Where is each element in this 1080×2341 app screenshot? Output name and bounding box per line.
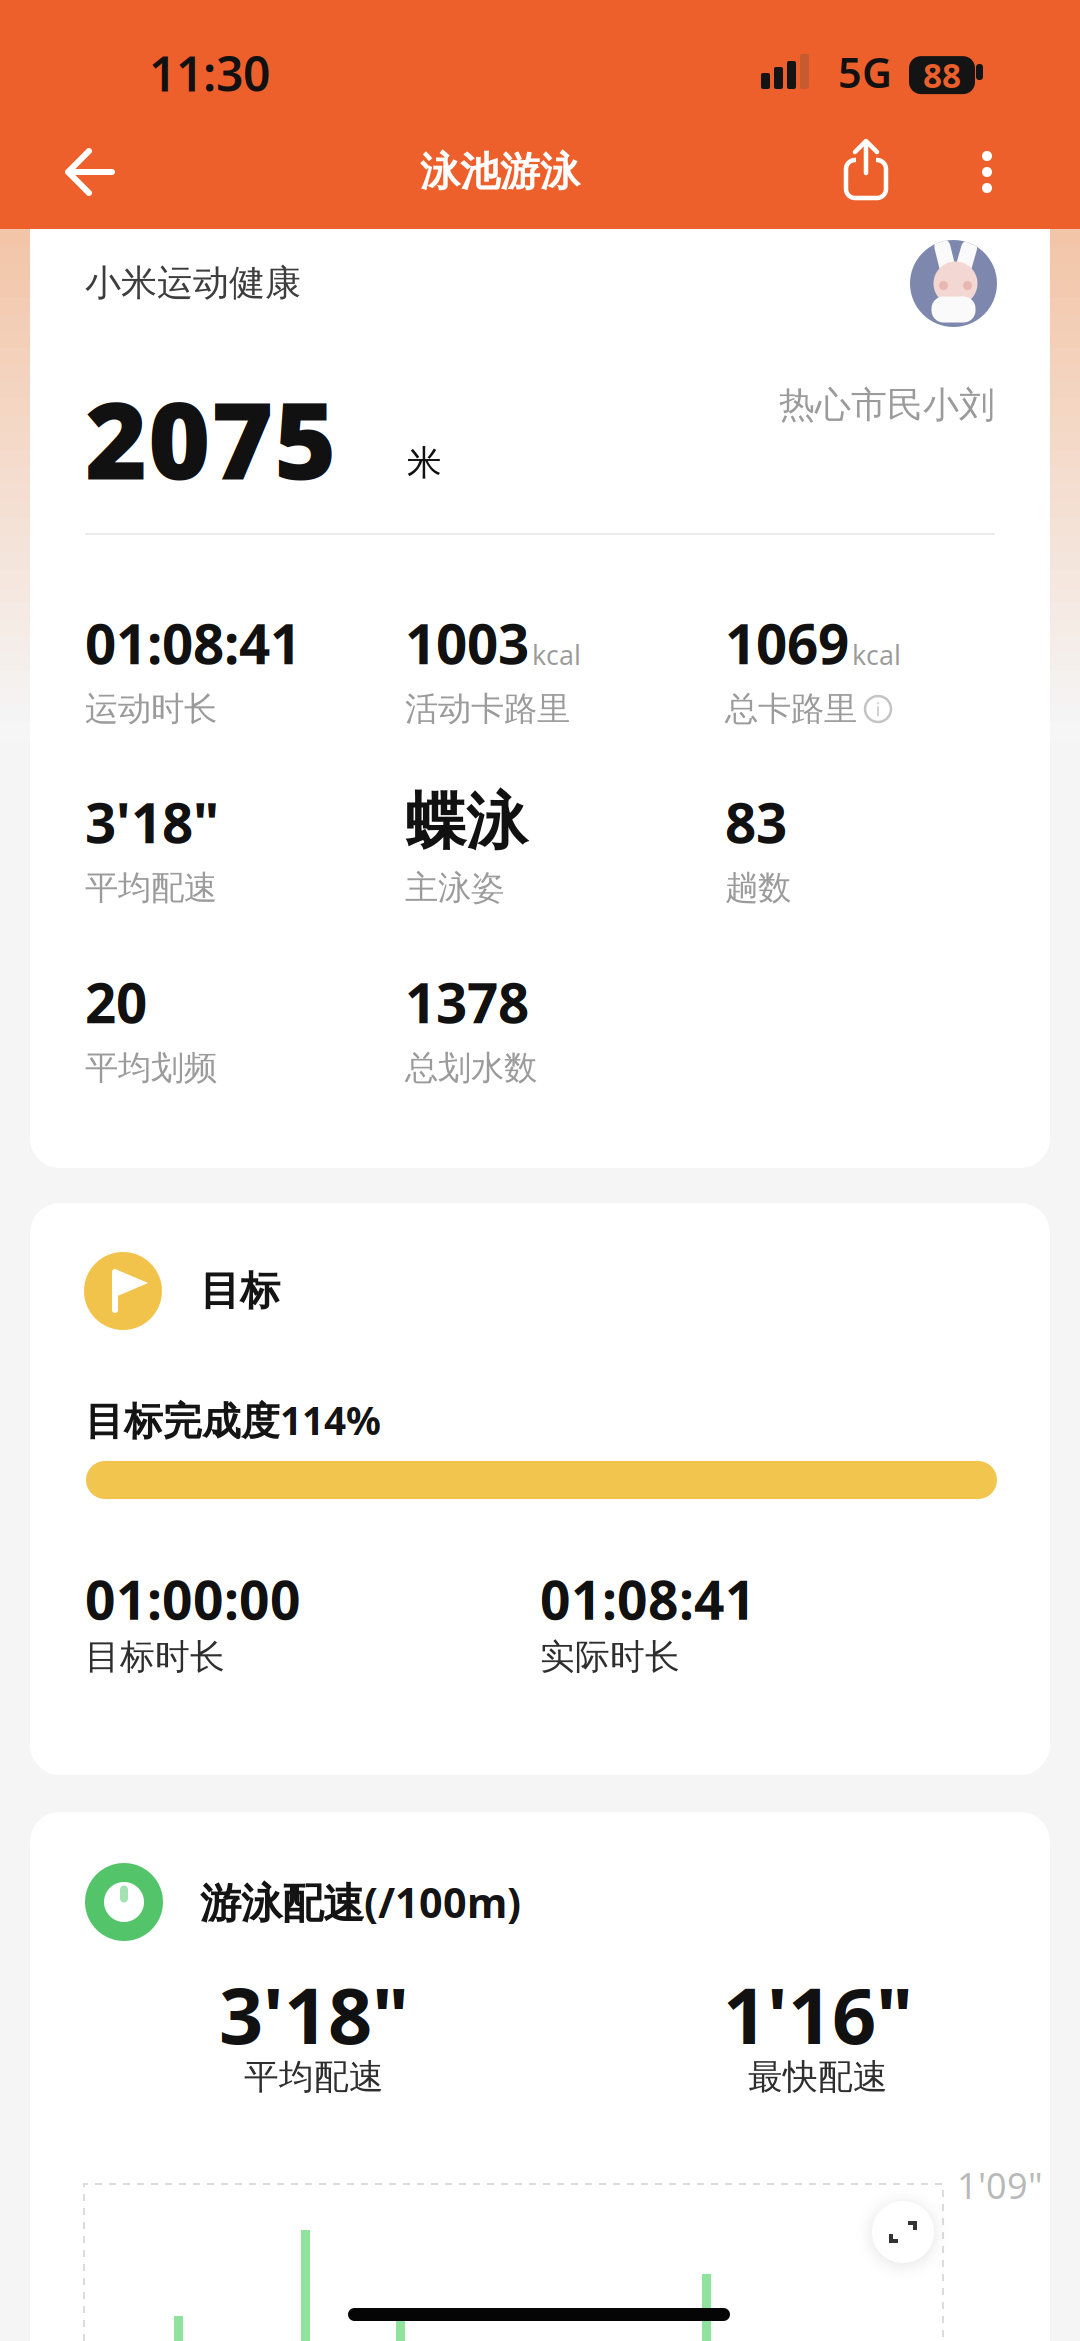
staticText: 蝶泳 bbox=[405, 784, 527, 860]
staticText: 最快配速 bbox=[748, 2056, 888, 2098]
staticText: 5G bbox=[838, 45, 892, 99]
staticText: 1378 bbox=[405, 966, 529, 1038]
button[interactable]: About total calories bbox=[865, 696, 891, 722]
staticText: 活动卡路里 bbox=[405, 688, 570, 729]
staticText: 总卡路里 bbox=[725, 688, 857, 729]
staticText: 米 bbox=[407, 442, 442, 484]
staticText: 运动时长 bbox=[85, 688, 217, 729]
staticText: 01:00:00 bbox=[85, 1564, 301, 1634]
staticText: 20 bbox=[85, 966, 147, 1038]
staticText: 主泳姿 bbox=[405, 867, 504, 908]
staticText: 83 bbox=[725, 786, 787, 858]
staticText: kcal bbox=[532, 637, 581, 672]
staticText: 小米运动健康 bbox=[85, 261, 301, 305]
staticText: 3'18" bbox=[219, 1963, 409, 2065]
staticText: 游泳配速(/100m) bbox=[200, 1875, 521, 1929]
staticText: 01:08:41 bbox=[85, 607, 301, 679]
button[interactable]: Back bbox=[44, 127, 134, 217]
staticText: 01:08:41 bbox=[540, 1564, 756, 1634]
staticText: 1003 bbox=[405, 607, 529, 679]
staticText: 88 bbox=[923, 53, 961, 97]
staticText: 1069 bbox=[725, 607, 849, 679]
staticText: 总划水数 bbox=[405, 1047, 537, 1088]
button[interactable]: More bbox=[952, 131, 1022, 211]
staticText: 目标完成度114% bbox=[85, 1394, 381, 1446]
staticText: kcal bbox=[852, 637, 901, 672]
button[interactable]: Expand chart bbox=[872, 2201, 934, 2263]
staticText: 1'16" bbox=[723, 1963, 913, 2065]
staticText: 平均划频 bbox=[85, 1047, 217, 1088]
staticText: 3'18" bbox=[85, 786, 219, 858]
staticText: 目标时长 bbox=[85, 1636, 225, 1678]
staticText: 平均配速 bbox=[244, 2056, 384, 2098]
button[interactable]: Profile bbox=[910, 240, 997, 327]
staticText: 平均配速 bbox=[85, 867, 217, 908]
staticText: 11:30 bbox=[149, 41, 270, 105]
staticText: 泳池游泳 bbox=[420, 147, 580, 196]
staticText: i bbox=[875, 697, 880, 721]
staticText: 实际时长 bbox=[540, 1636, 680, 1678]
staticText: 目标 bbox=[200, 1266, 280, 1315]
staticText: 1'09" bbox=[957, 2161, 1043, 2209]
staticText: 热心市民小刘 bbox=[779, 383, 995, 427]
staticText: 2075 bbox=[85, 367, 337, 509]
button[interactable]: Share bbox=[826, 131, 906, 211]
staticText: 趟数 bbox=[725, 867, 791, 908]
